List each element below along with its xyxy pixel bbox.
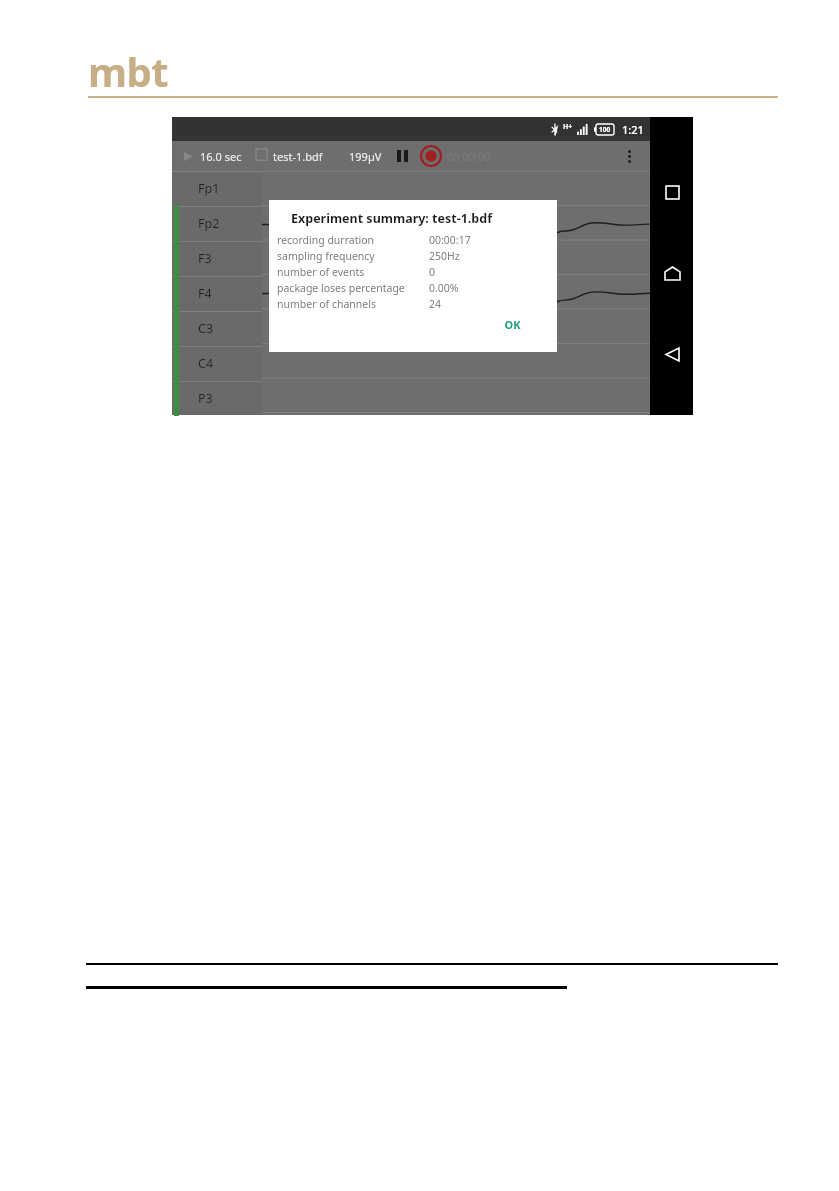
staticText: C4: [198, 355, 214, 372]
button[interactable]: P3: [172, 381, 262, 415]
button[interactable]: mbt: [88, 44, 169, 98]
staticText: F4: [198, 285, 212, 302]
staticText: C3: [198, 320, 214, 337]
button[interactable]: Home: [655, 256, 689, 290]
staticText: 0: [429, 265, 436, 279]
button[interactable]: OK: [498, 313, 527, 334]
staticText: H+: [563, 122, 573, 132]
staticText: P3: [198, 390, 213, 407]
button[interactable]: Time window: [180, 148, 196, 164]
button[interactable]: C4: [172, 346, 262, 381]
staticText: 250Hz: [429, 249, 460, 263]
staticText: sampling frequency: [277, 249, 429, 263]
staticText: 0.00%: [429, 281, 459, 295]
staticText: 16.0 sec: [200, 149, 242, 164]
staticText: package loses percentage: [277, 281, 429, 295]
button[interactable]: More options: [618, 145, 640, 167]
staticText: Experiment summary: test-1.bdf: [291, 210, 557, 227]
button[interactable]: F3: [172, 241, 262, 276]
button[interactable]: File: [256, 149, 270, 163]
staticText: OK: [504, 317, 521, 330]
button[interactable]: Record: [420, 145, 442, 167]
staticText: 100: [599, 125, 611, 134]
button[interactable]: C3: [172, 311, 262, 346]
staticText: 1:21: [622, 122, 644, 137]
button[interactable]: Pause: [394, 148, 410, 164]
button[interactable]: Back: [655, 337, 689, 371]
staticText: mbt: [88, 44, 169, 98]
staticText: test-1.bdf: [273, 149, 323, 164]
staticText: recording durration: [277, 233, 429, 247]
staticText: 00:00:00: [447, 149, 491, 164]
staticText: F3: [198, 250, 212, 267]
staticText: Fp2: [198, 215, 220, 232]
button[interactable]: Fp2: [172, 206, 262, 241]
staticText: number of events: [277, 265, 429, 279]
staticText: 199µV: [349, 149, 382, 164]
staticText: 24: [429, 297, 442, 311]
button[interactable]: Fp1: [172, 171, 262, 206]
button[interactable]: Recents: [655, 175, 689, 209]
button[interactable]: F4: [172, 276, 262, 311]
staticText: Fp1: [198, 180, 220, 197]
staticText: 00:00:17: [429, 233, 471, 247]
staticText: number of channels: [277, 297, 429, 311]
